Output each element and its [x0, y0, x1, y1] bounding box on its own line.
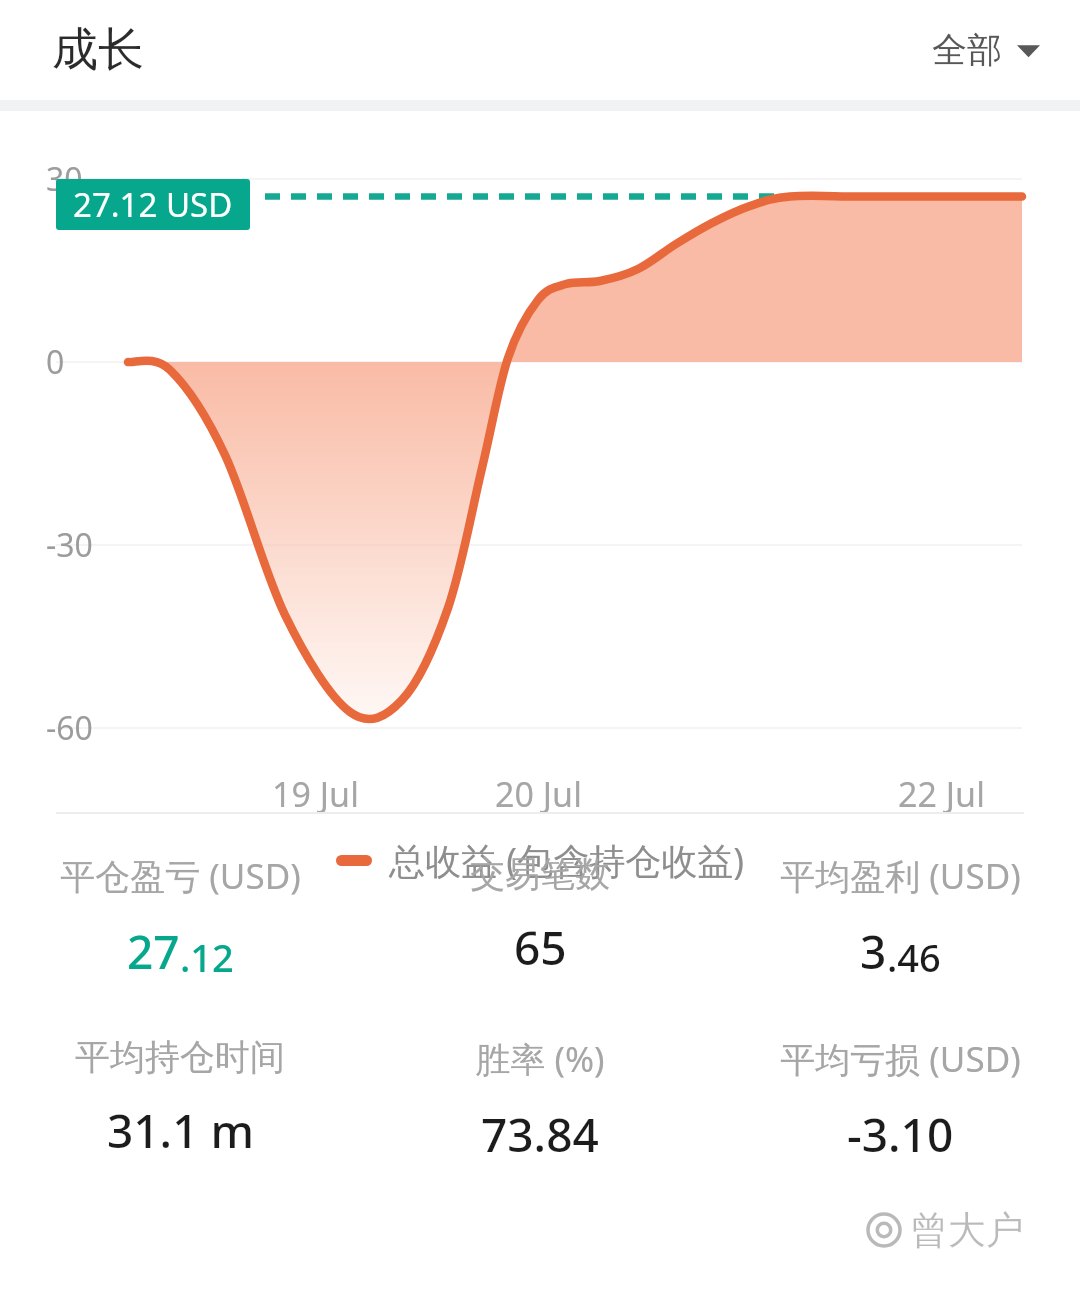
staticText: 65	[514, 916, 567, 979]
staticText: 成长	[52, 21, 144, 79]
staticText: 31.1 m	[107, 1099, 254, 1162]
staticText: 曾大户	[910, 1206, 1024, 1254]
staticText: 22 Jul	[898, 771, 985, 817]
staticText: 30	[46, 157, 83, 201]
staticText: 3	[860, 920, 887, 983]
button[interactable]: 平均亏损 (USD)	[720, 1031, 1080, 1170]
button[interactable]: 总收益 (包含持仓收益)	[0, 836, 1080, 885]
staticText: 20 Jul	[495, 771, 582, 817]
staticText: 27.12 USD	[73, 182, 233, 227]
staticText: 平均持仓时间	[75, 1035, 285, 1079]
staticText: -30	[46, 523, 93, 567]
staticText: -60	[46, 706, 93, 750]
staticText: 平仓盈亏 (USD)	[60, 852, 301, 900]
staticText: 交易笔数	[470, 852, 610, 896]
button[interactable]: 交易笔数	[360, 848, 720, 983]
staticText: -3.10	[847, 1103, 954, 1166]
staticText: .46	[887, 931, 941, 983]
staticText: 平均盈利 (USD)	[780, 852, 1021, 900]
staticText: 总收益 (包含持仓收益)	[389, 836, 744, 885]
staticText: 73.84	[481, 1103, 599, 1166]
other: Select period	[1017, 43, 1040, 58]
staticText: 0	[46, 340, 65, 384]
button[interactable]: 27.12 USD	[56, 179, 250, 230]
button[interactable]: 全部	[922, 18, 1050, 82]
staticText: 全部	[932, 28, 1002, 72]
button[interactable]: 胜率 (%)	[360, 1031, 720, 1170]
button[interactable]: 平仓盈亏 (USD)	[0, 848, 360, 987]
staticText: .12	[180, 931, 234, 983]
staticText: 胜率 (%)	[475, 1035, 605, 1083]
button[interactable]: 平均盈利 (USD)	[720, 848, 1080, 987]
staticText: 平均亏损 (USD)	[780, 1035, 1021, 1083]
button[interactable]: 平均持仓时间	[0, 1031, 360, 1166]
staticText: 27	[127, 920, 180, 983]
staticText: 19 Jul	[272, 771, 359, 817]
